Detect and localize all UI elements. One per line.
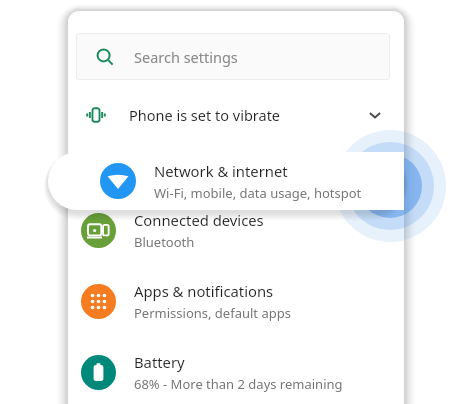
button[interactable]: Search settings [76,33,390,80]
staticText: Connected devices [134,210,264,230]
button[interactable]: Phone is set to vibrate [68,91,404,138]
staticText: Bluetooth [134,233,195,251]
button[interactable]: Battery [68,343,404,401]
staticText: 68% - More than 2 days remaining [134,375,343,393]
staticText: Network & internet [154,161,288,181]
button[interactable]: Network & internet [48,152,404,210]
button[interactable]: Connected devices [68,201,404,259]
staticText: Phone is set to vibrate [129,105,281,125]
staticText: Apps & notifications [134,281,274,301]
staticText: Wi-Fi, mobile, data usage, hotspot [154,184,362,202]
staticText: Permissions, default apps [134,304,291,322]
staticText: Battery [134,352,185,372]
button[interactable]: Apps & notifications [68,272,404,330]
button[interactable]: Expand [360,100,390,130]
staticText: Search settings [134,47,238,67]
